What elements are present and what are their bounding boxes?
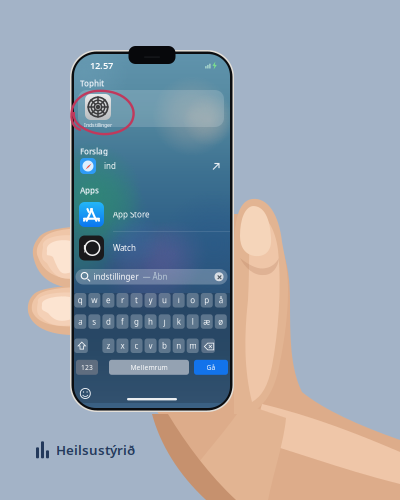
- staticText: — Åbn: [142, 271, 167, 282]
- button[interactable]: s: [88, 314, 100, 329]
- staticText: Gå: [206, 363, 215, 372]
- button[interactable]: n: [173, 338, 185, 353]
- button[interactable]: k: [173, 314, 185, 329]
- staticText: 12.57: [90, 59, 113, 72]
- staticText: Tophit: [80, 78, 104, 89]
- button[interactable]: m: [187, 338, 199, 353]
- button[interactable]: l: [187, 314, 199, 329]
- staticText: Mellemrum: [130, 363, 167, 372]
- staticText: c: [134, 340, 138, 351]
- staticText: p: [204, 295, 209, 305]
- staticText: t: [135, 295, 138, 305]
- button[interactable]: Gå: [194, 360, 228, 375]
- staticText: j: [164, 316, 166, 327]
- staticText: o: [190, 295, 195, 305]
- staticText: z: [106, 340, 110, 351]
- staticText: Forslag: [80, 146, 108, 157]
- staticText: g: [134, 316, 139, 327]
- button[interactable]: Indstillinger: [78, 90, 224, 127]
- button[interactable]: Emoji: [79, 387, 91, 399]
- button[interactable]: h: [145, 314, 157, 329]
- button[interactable]: z: [102, 338, 114, 353]
- button[interactable]: b: [159, 338, 171, 353]
- staticText: Apps: [80, 185, 99, 196]
- button[interactable]: f: [116, 314, 128, 329]
- button[interactable]: d: [102, 314, 114, 329]
- staticText: q: [78, 295, 83, 305]
- staticText: k: [177, 316, 181, 327]
- staticText: App Store: [113, 209, 150, 220]
- staticText: m: [189, 340, 196, 351]
- staticText: v: [149, 340, 153, 351]
- button[interactable]: æ: [201, 314, 213, 329]
- staticText: Indstillinger: [84, 121, 112, 129]
- staticText: y: [149, 295, 153, 305]
- button[interactable]: Delete: [201, 338, 215, 353]
- staticText: indstillinger: [93, 271, 138, 282]
- button[interactable]: w: [88, 293, 100, 307]
- staticText: w: [91, 295, 97, 305]
- button[interactable]: ø: [215, 314, 227, 329]
- staticText: h: [148, 316, 153, 327]
- button[interactable]: e: [102, 293, 114, 307]
- staticText: i: [178, 295, 180, 305]
- staticText: å: [219, 295, 223, 305]
- staticText: u: [162, 295, 167, 305]
- button[interactable]: å: [215, 293, 227, 307]
- staticText: r: [121, 295, 124, 305]
- staticText: ind: [104, 161, 116, 171]
- button[interactable]: c: [130, 338, 142, 353]
- staticText: l: [192, 316, 194, 327]
- staticText: n: [176, 340, 181, 351]
- button[interactable]: o: [187, 293, 199, 307]
- button[interactable]: Shift: [74, 338, 88, 353]
- button[interactable]: App Store: [74, 198, 230, 231]
- staticText: f: [121, 316, 124, 327]
- button[interactable]: y: [145, 293, 157, 307]
- button[interactable]: u: [159, 293, 171, 307]
- button[interactable]: g: [130, 314, 142, 329]
- button[interactable]: r: [116, 293, 128, 307]
- button[interactable]: i: [173, 293, 185, 307]
- staticText: b: [162, 340, 167, 351]
- staticText: Watch: [113, 243, 136, 253]
- staticText: ø: [218, 316, 223, 327]
- button[interactable]: a: [74, 314, 86, 329]
- button[interactable]: ind: [74, 156, 230, 176]
- button[interactable]: j: [159, 314, 171, 329]
- staticText: s: [92, 316, 96, 327]
- staticText: d: [106, 316, 111, 327]
- button[interactable]: x: [116, 338, 128, 353]
- staticText: a: [78, 316, 82, 327]
- button[interactable]: Watch: [74, 231, 230, 264]
- button[interactable]: Mellemrum: [109, 360, 189, 375]
- staticText: e: [106, 295, 111, 305]
- button[interactable]: p: [201, 293, 213, 307]
- button[interactable]: v: [145, 338, 157, 353]
- button[interactable]: indstillinger: [75, 269, 227, 284]
- staticText: 123: [81, 363, 93, 372]
- button[interactable]: 123: [76, 360, 98, 375]
- staticText: æ: [203, 316, 210, 327]
- button[interactable]: t: [130, 293, 142, 307]
- button[interactable]: q: [74, 293, 86, 307]
- staticText: Heilsustýrið: [56, 441, 135, 459]
- staticText: x: [120, 340, 124, 351]
